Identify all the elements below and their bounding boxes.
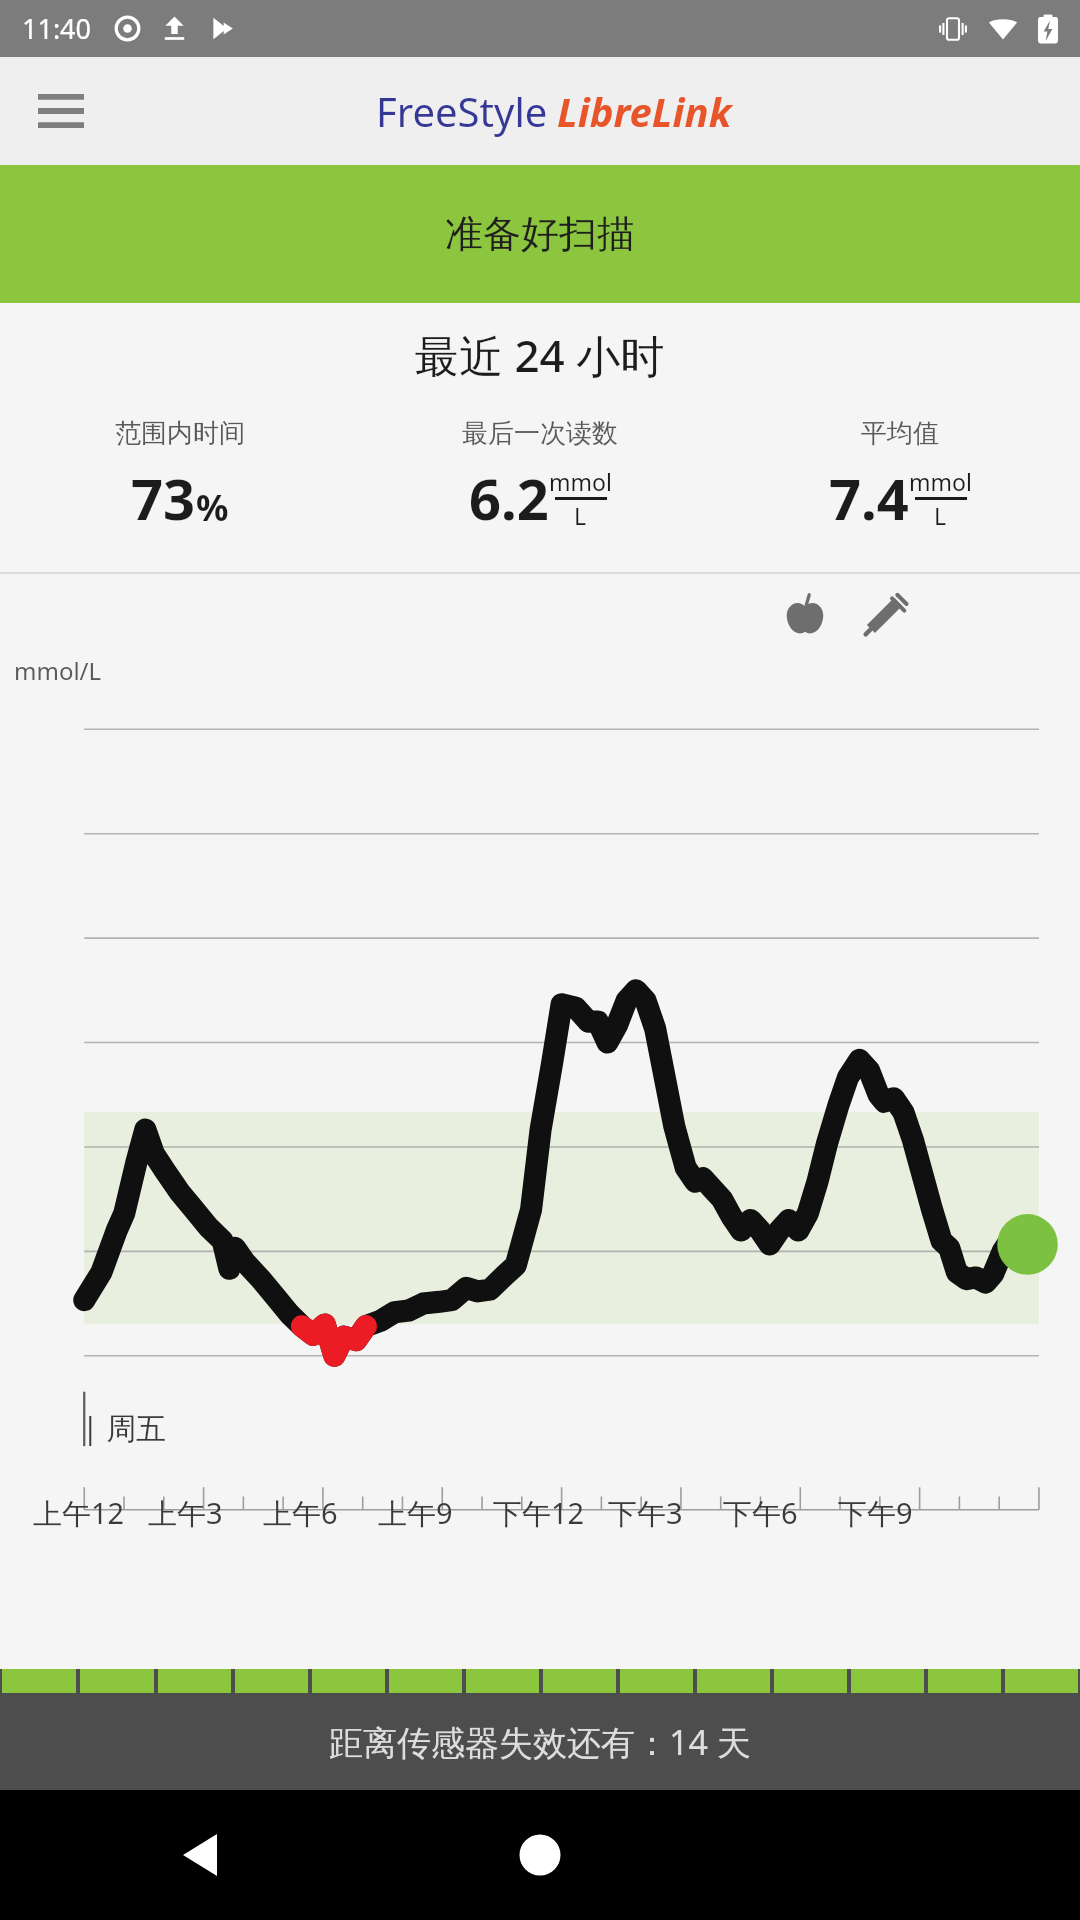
staticText: 上午6 — [263, 1493, 338, 1533]
staticText: FreeStyle — [376, 84, 548, 138]
staticText: 6.2 — [469, 460, 549, 536]
staticText: LibreLink — [557, 84, 732, 138]
staticText: 平均值 — [861, 417, 939, 450]
button[interactable]: Home — [497, 1812, 583, 1898]
staticText: 7.4 — [829, 460, 909, 536]
staticText: | 周五 — [82, 1407, 167, 1448]
staticText: L — [574, 500, 587, 531]
staticText: 11:40 — [22, 10, 92, 47]
button[interactable]: Food log — [778, 588, 832, 642]
staticText: 下午12 — [493, 1493, 585, 1533]
staticText: 准备好扫描 — [445, 210, 635, 258]
button[interactable]: 准备好扫描 — [0, 165, 1080, 303]
staticText: 上午3 — [148, 1493, 223, 1533]
staticText: 下午6 — [723, 1493, 798, 1533]
staticText: 下午3 — [608, 1493, 683, 1533]
button[interactable]: Back — [160, 1815, 240, 1895]
staticText: 最后一次读数 — [462, 417, 618, 450]
staticText: 下午9 — [838, 1493, 913, 1533]
button[interactable]: 距离传感器失效还有：14 天 — [0, 1693, 1080, 1790]
staticText: mmol/L — [14, 654, 102, 687]
button[interactable]: Menu — [32, 82, 90, 140]
staticText: 上午9 — [378, 1493, 453, 1533]
staticText: mmol — [909, 466, 972, 497]
staticText: 上午12 — [33, 1493, 125, 1533]
staticText: 最近 24 小时 — [415, 325, 665, 385]
staticText: 范围内时间 — [115, 417, 245, 450]
button[interactable]: Insulin log — [858, 588, 912, 642]
staticText: 距离传感器失效还有：14 天 — [329, 1719, 751, 1765]
staticText: 73 — [131, 460, 196, 536]
staticText: mmol — [549, 466, 612, 497]
staticText: L — [934, 500, 947, 531]
staticText: % — [196, 483, 229, 532]
